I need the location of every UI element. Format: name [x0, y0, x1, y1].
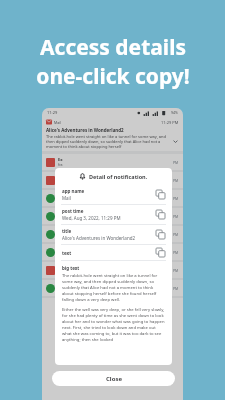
staticText: PM: [173, 214, 179, 219]
staticText: cal: [58, 234, 63, 239]
button[interactable]: Mi: [46, 193, 179, 203]
staticText: Wed, Aug 3, 2022, 11:29 PM: [62, 215, 121, 221]
staticText: post time: [62, 208, 84, 214]
other: Copy: [156, 248, 165, 257]
staticText: one-click copy!: [36, 62, 190, 91]
staticText: The rabbit-hole went straight on like a …: [62, 273, 165, 303]
button[interactable]: Ex: [46, 175, 179, 185]
button[interactable]: app name: [62, 188, 165, 201]
staticText: Close: [106, 375, 122, 383]
staticText: Na: [58, 252, 63, 257]
staticText: Mi: [58, 229, 63, 234]
staticText: Aa: [58, 247, 64, 252]
staticText: PM: [173, 178, 179, 183]
button[interactable]: post time: [62, 208, 165, 221]
staticText: Mail: [54, 120, 61, 125]
staticText: PM: [173, 232, 179, 237]
staticText: big text: [62, 265, 80, 271]
staticText: 11:29: [47, 110, 58, 115]
other: Collapse: [172, 138, 179, 145]
staticText: Access details: [40, 33, 186, 62]
other: Copy: [156, 230, 165, 239]
button[interactable]: text: [62, 248, 165, 257]
button[interactable]: Mi: [46, 283, 179, 293]
staticText: Detail of notification.: [89, 173, 148, 180]
staticText: 11:29 PM: [161, 120, 179, 125]
staticText: 94%: [171, 110, 178, 115]
button[interactable]: Close: [52, 371, 175, 386]
staticText: PM: [173, 160, 179, 165]
staticText: title: [62, 228, 72, 234]
staticText: PM: [173, 286, 179, 291]
staticText: PM: [173, 250, 179, 255]
staticText: Alice's Adventures in Wonderland2: [62, 235, 136, 241]
staticText: text: [62, 250, 156, 256]
staticText: Mail: [62, 195, 71, 201]
button[interactable]: Hi: [46, 265, 179, 275]
staticText: Mi: [58, 193, 63, 198]
other: Copy: [156, 190, 165, 199]
staticText: PM: [173, 268, 179, 273]
button[interactable]: Mi: [46, 211, 179, 221]
staticText: Mi: [58, 283, 63, 288]
staticText: app name: [62, 188, 85, 194]
other: Copy: [156, 210, 165, 219]
staticText: Alice's Adventures in Wonderland2: [46, 127, 124, 133]
button[interactable]: title: [62, 228, 165, 241]
staticText: Hi: [58, 265, 63, 270]
staticText: The rabbit-hole went straight on like a …: [46, 134, 170, 149]
staticText: Thi: [58, 270, 64, 275]
staticText: Either the well was very deep, or she fe…: [62, 307, 165, 343]
staticText: PM: [173, 196, 179, 201]
staticText: Ex: [58, 157, 63, 162]
staticText: Mi: [58, 211, 63, 216]
button[interactable]: Aa: [46, 247, 179, 257]
staticText: fra: [58, 162, 63, 167]
button[interactable]: Ex: [46, 157, 179, 167]
staticText: Mi: [58, 198, 63, 203]
button[interactable]: Mi: [46, 229, 179, 239]
